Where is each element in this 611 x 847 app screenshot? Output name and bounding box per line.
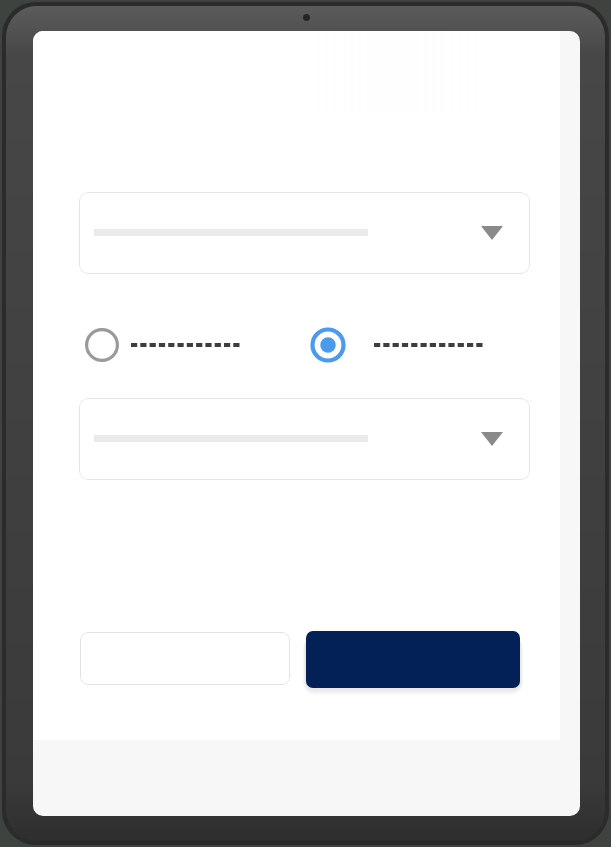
button[interactable] bbox=[85, 327, 265, 363]
button[interactable]: Submit bbox=[306, 631, 520, 688]
button[interactable]: Select option bbox=[79, 398, 530, 480]
button[interactable] bbox=[311, 327, 516, 363]
button[interactable]: Cancel bbox=[80, 632, 290, 685]
button[interactable]: Select option bbox=[79, 192, 530, 274]
